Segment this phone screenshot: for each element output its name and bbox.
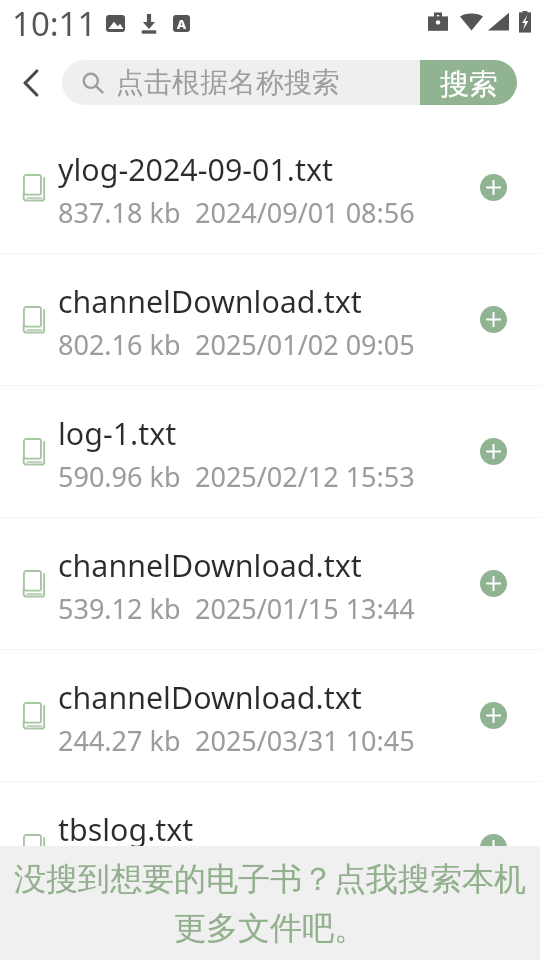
button[interactable]: Add	[480, 702, 507, 729]
staticText: 2025/03/31 10:45	[195, 722, 415, 759]
staticText: ylog-2024-09-01.txt	[58, 149, 334, 190]
staticText: 2024/09/01 08:56	[195, 194, 415, 231]
staticText: 837.18 kb	[58, 194, 181, 231]
button[interactable]: 点击根据名称搜索	[62, 60, 517, 105]
button[interactable]: Add	[480, 834, 507, 861]
staticText: 2025/01/15 13:44	[195, 590, 415, 627]
staticText: 539.12 kb	[58, 590, 181, 627]
staticText: 搜索	[440, 66, 498, 103]
button[interactable]: Add	[480, 570, 507, 597]
staticText: A	[177, 15, 186, 32]
button[interactable]: Back	[4, 56, 57, 109]
button[interactable]: Add	[480, 306, 507, 333]
button[interactable]: Add	[480, 174, 507, 201]
button[interactable]: tbslog.txt	[0, 782, 540, 913]
staticText: 590.96 kb	[58, 458, 181, 495]
button[interactable]: channelDownload.txt	[0, 650, 540, 781]
button[interactable]: log-1.txt	[0, 386, 540, 517]
staticText: 点击根据名称搜索	[116, 65, 340, 100]
button[interactable]: channelDownload.txt	[0, 518, 540, 649]
staticText: 2025/01/02 09:05	[195, 326, 415, 363]
staticText: channelDownload.txt	[58, 545, 362, 586]
button[interactable]: channelDownload.txt	[0, 254, 540, 385]
button[interactable]: 没搜到想要的电子书？点我搜索本机 更多文件吧。	[0, 846, 540, 960]
staticText: 244.27 kb	[58, 722, 181, 759]
button[interactable]: 搜索	[420, 60, 517, 105]
staticText: channelDownload.txt	[58, 677, 362, 718]
staticText: tbslog.txt	[58, 809, 194, 850]
staticText: 802.16 kb	[58, 326, 181, 363]
staticText: 415.33 kb	[58, 854, 181, 891]
staticText: log-1.txt	[58, 413, 177, 454]
staticText: 2025/02/12 15:53	[195, 458, 415, 495]
staticText: 10:11	[12, 1, 97, 46]
button[interactable]: ylog-2024-09-01.txt	[0, 122, 540, 253]
button[interactable]: Add	[480, 438, 507, 465]
staticText: channelDownload.txt	[58, 281, 362, 322]
staticText: 没搜到想要的电子书？点我搜索本机 更多文件吧。	[14, 859, 526, 948]
staticText: 2025/04/02 11:20	[195, 854, 415, 891]
